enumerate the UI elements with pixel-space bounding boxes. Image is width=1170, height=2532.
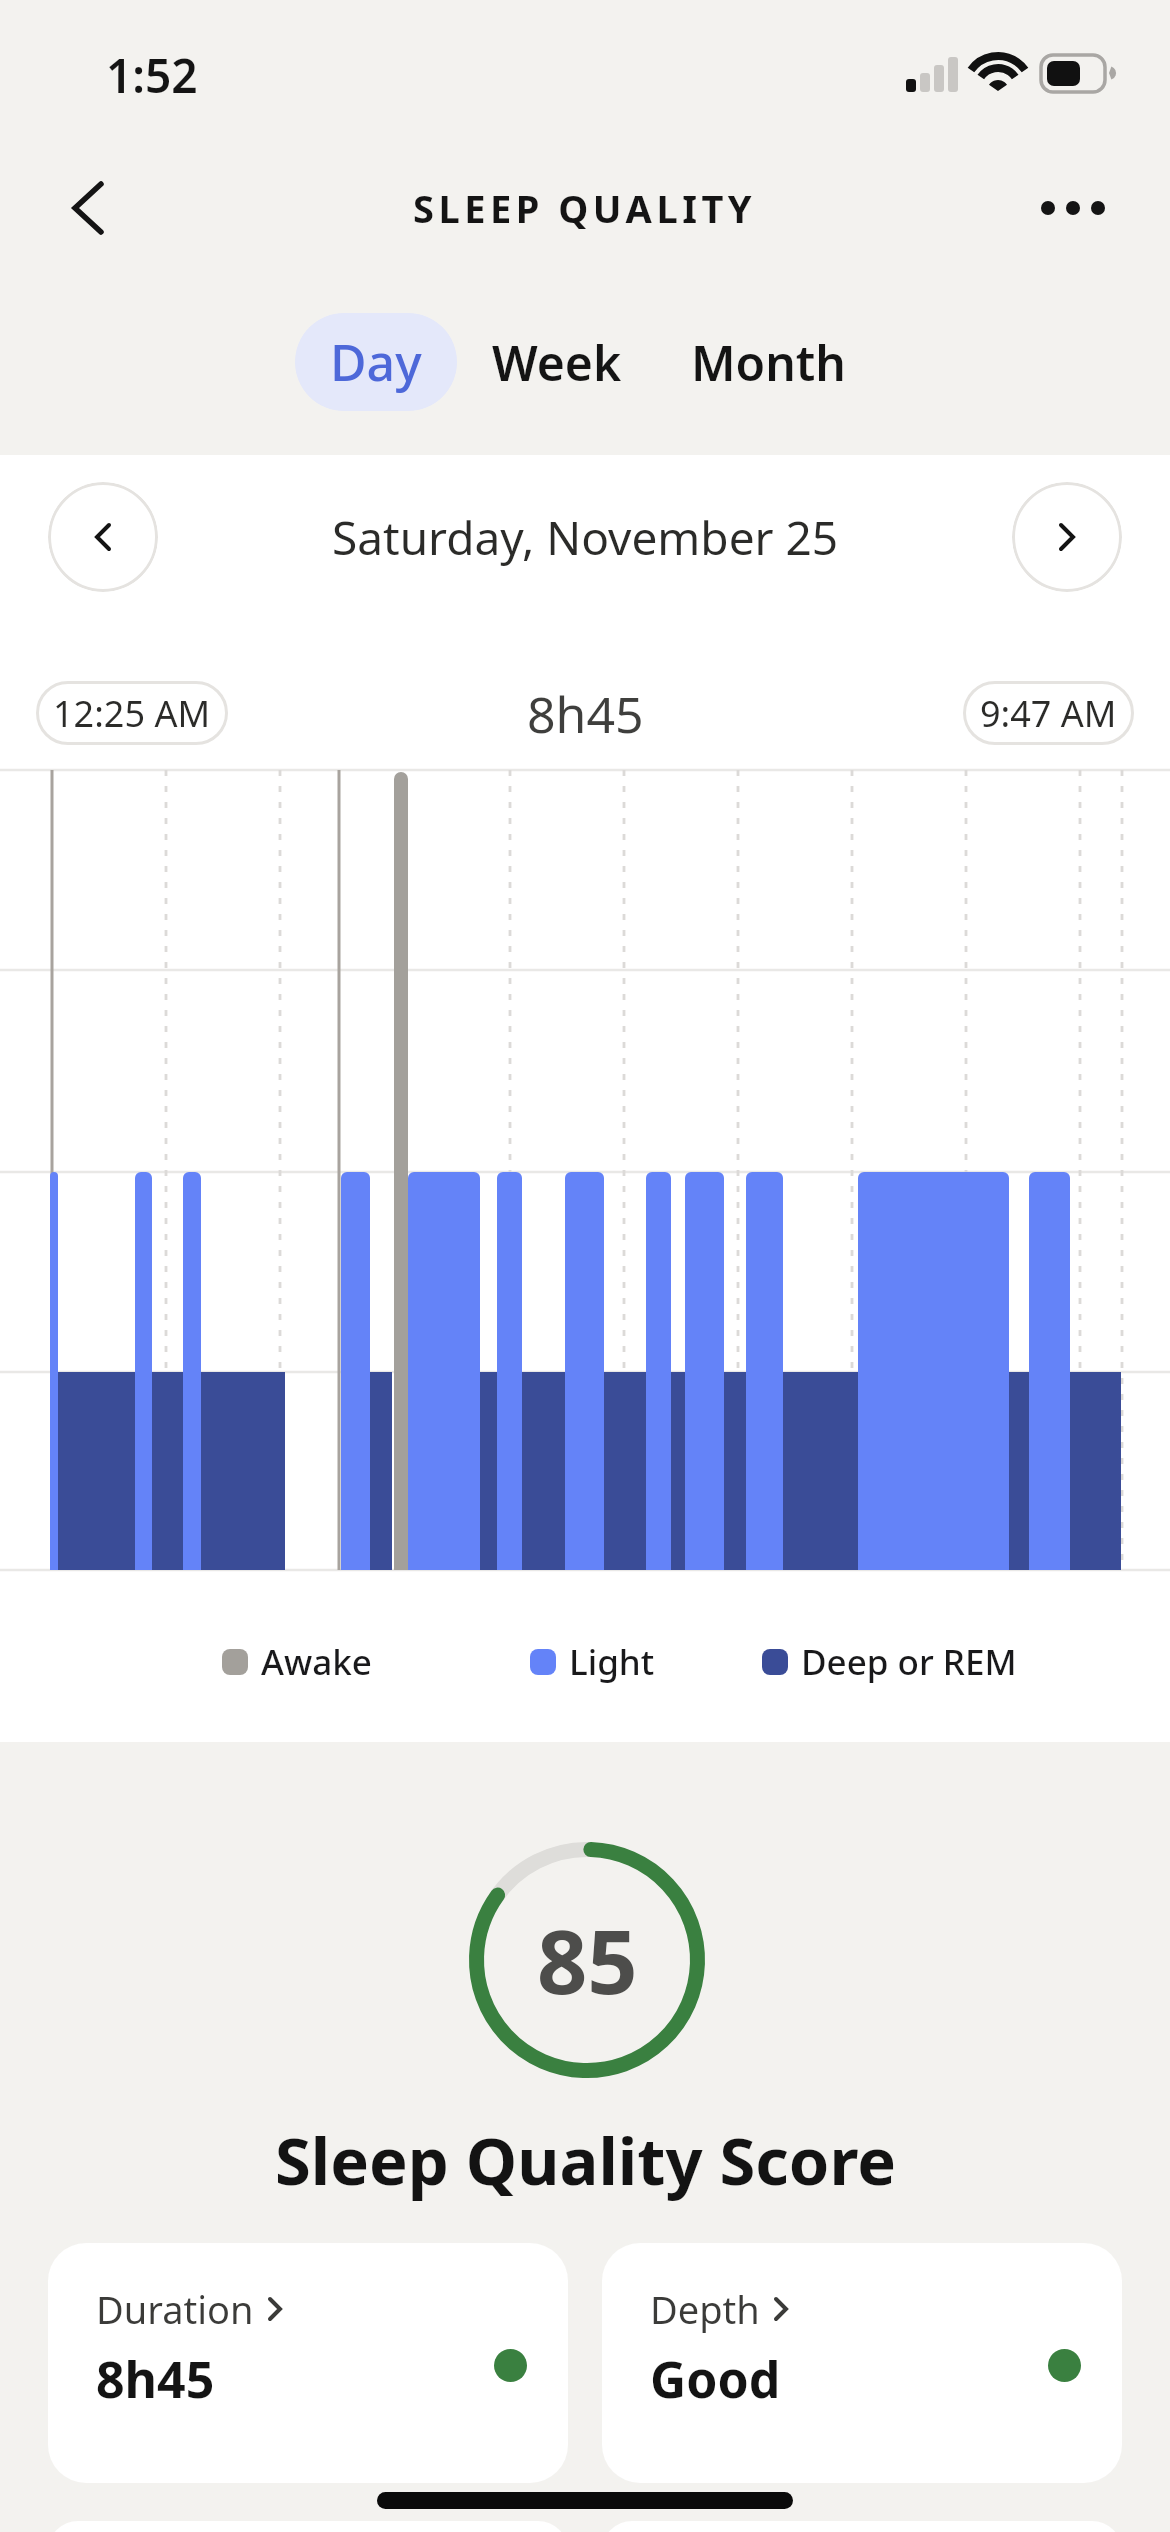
button[interactable] (48, 168, 128, 248)
button[interactable]: Depth (602, 2243, 1122, 2483)
staticText: Sleep Quality Score (275, 2116, 896, 2205)
staticText: Month (691, 330, 846, 395)
staticText: 1:52 (106, 44, 198, 104)
staticText: Day (330, 328, 422, 396)
staticText: 9:47 AM (980, 689, 1117, 738)
staticText: 8h45 (527, 680, 644, 746)
staticText: Week (492, 330, 622, 395)
staticText: Duration (96, 2283, 254, 2335)
staticText: Light (569, 1638, 655, 1686)
button[interactable]: Week (486, 313, 628, 411)
button[interactable] (1012, 482, 1122, 592)
button[interactable]: Duration (48, 2243, 568, 2483)
button[interactable]: Day (295, 313, 457, 411)
button[interactable] (48, 482, 158, 592)
staticText: Awake (261, 1638, 372, 1686)
staticText: 85 (537, 1900, 638, 2020)
staticText: Saturday, November 25 (332, 506, 839, 569)
staticText: SLEEP QUALITY (413, 182, 757, 234)
staticText: Depth (650, 2283, 760, 2335)
button[interactable] (1023, 168, 1123, 248)
staticText: 12:25 AM (53, 689, 211, 738)
button[interactable]: Month (688, 313, 848, 411)
staticText: Good (650, 2345, 781, 2413)
staticText: 8h45 (96, 2345, 215, 2413)
staticText: Deep or REM (801, 1638, 1017, 1686)
